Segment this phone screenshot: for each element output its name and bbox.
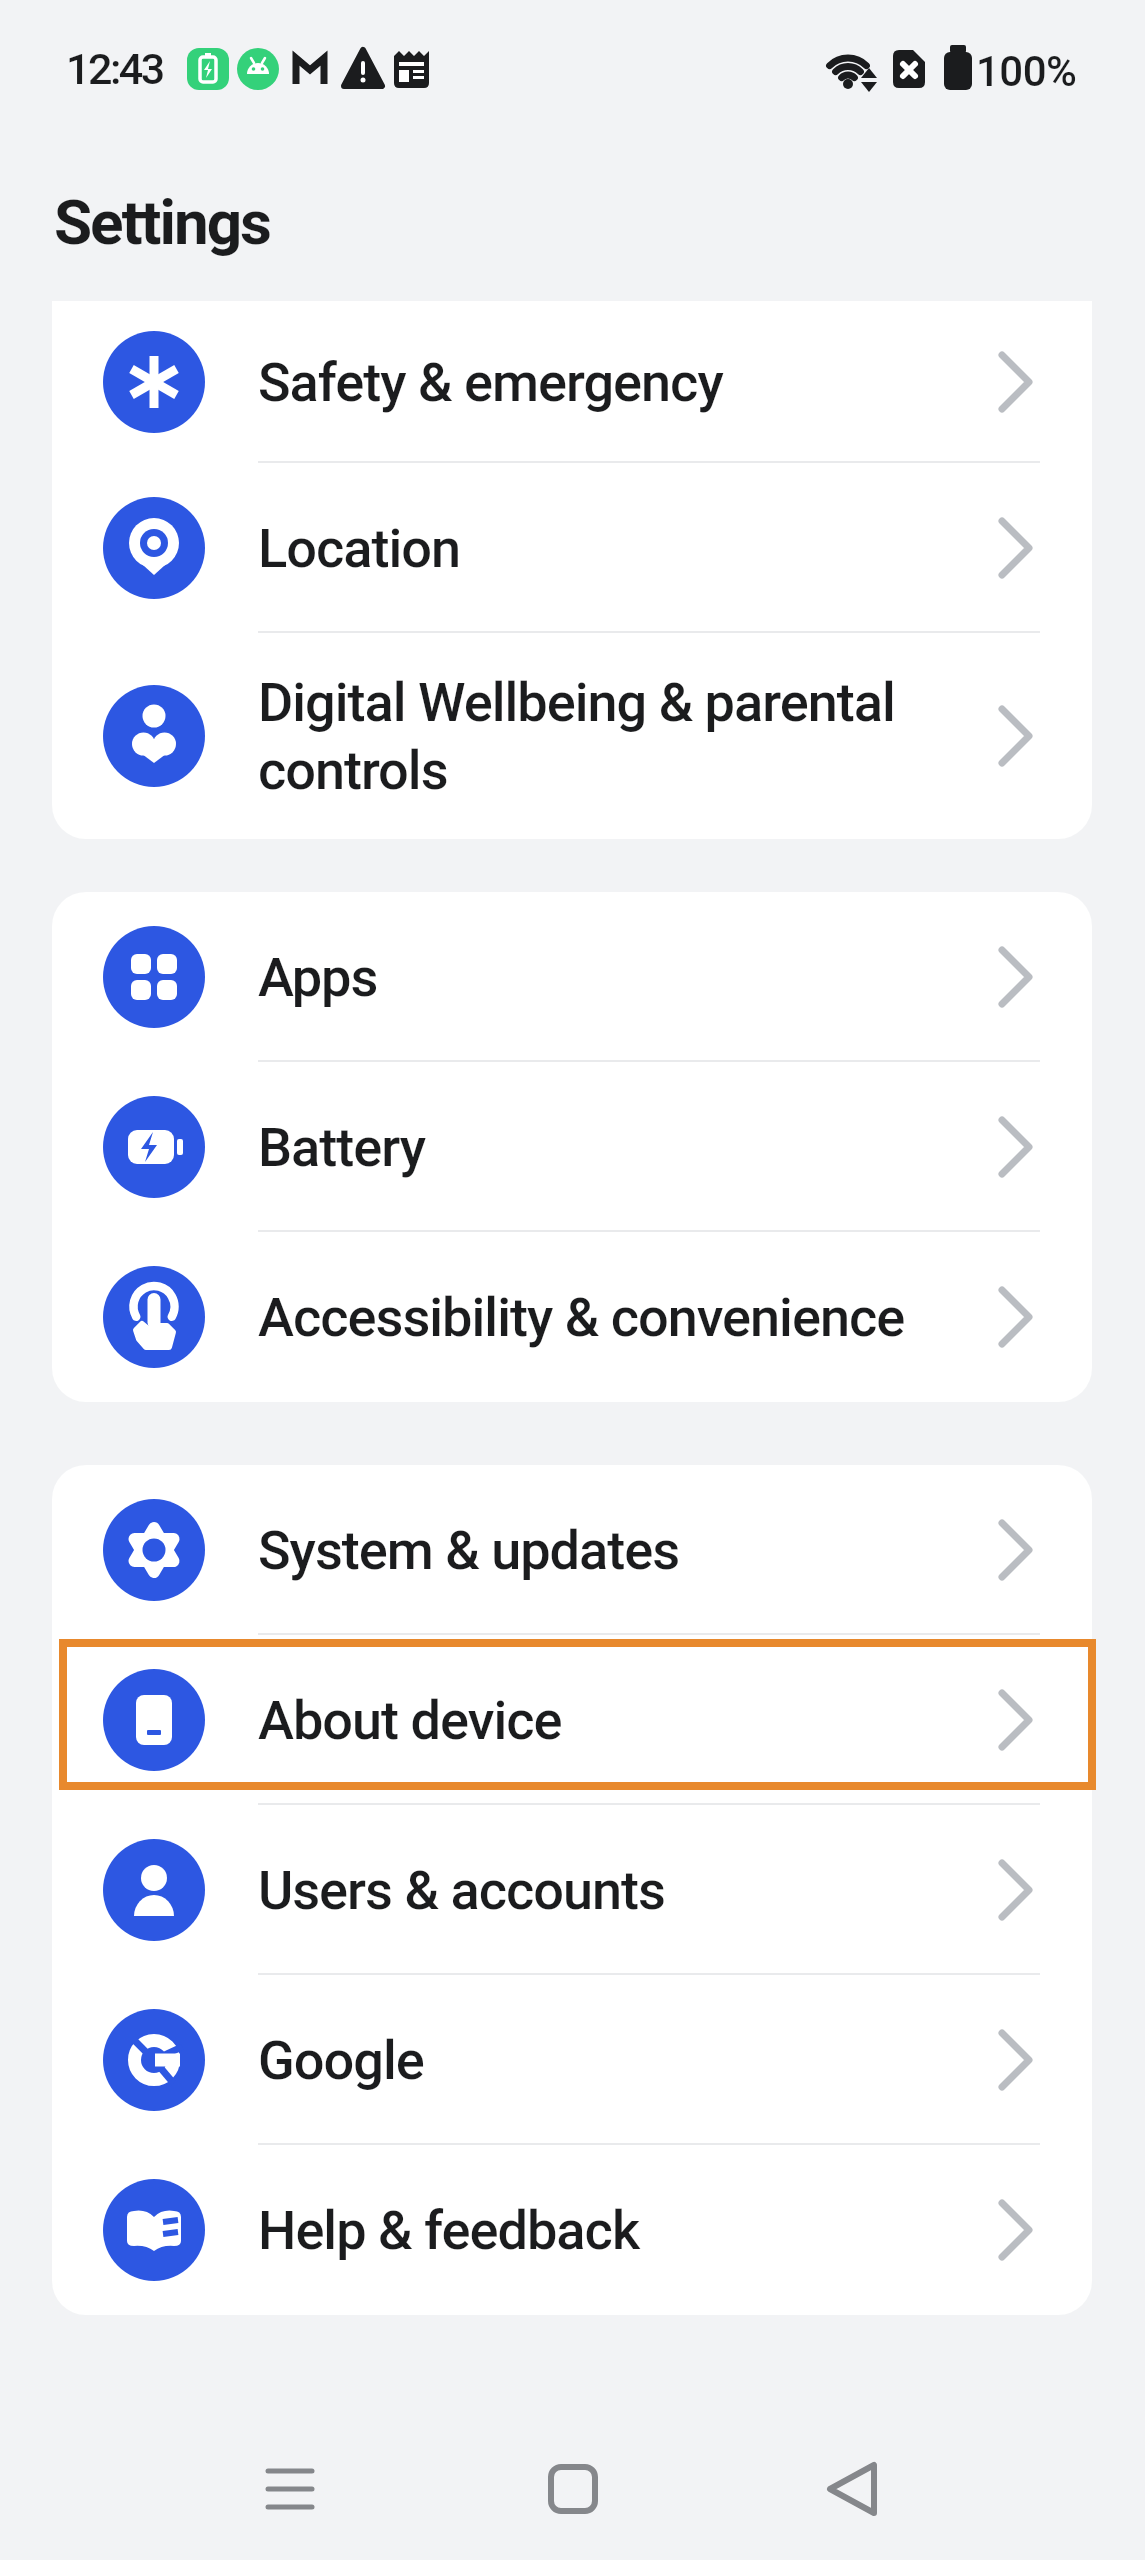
staticText: Safety & emergency	[258, 351, 723, 414]
staticText: Location	[258, 517, 461, 580]
button[interactable]: Help & feedback	[52, 2145, 1092, 2315]
staticText: System & updates	[258, 1519, 680, 1582]
button[interactable]: Safety & emergency	[52, 301, 1092, 463]
staticText: Users & accounts	[258, 1859, 665, 1922]
button[interactable]: About device	[52, 1635, 1092, 1805]
button[interactable]: Users & accounts	[52, 1805, 1092, 1975]
staticText: Google	[258, 2029, 424, 2092]
staticText: Accessibility & convenience	[258, 1286, 905, 1349]
button[interactable]: Digital Wellbeing & parental controls	[52, 633, 1092, 839]
staticText: Digital Wellbeing & parental controls	[258, 671, 895, 802]
button[interactable]: Battery	[52, 1062, 1092, 1232]
staticText: Battery	[258, 1116, 426, 1179]
button[interactable]: Location	[52, 463, 1092, 633]
button[interactable]	[245, 2444, 335, 2534]
staticText: 12:43	[66, 44, 163, 94]
button[interactable]	[528, 2444, 618, 2534]
button[interactable]	[807, 2444, 897, 2534]
staticText: Help & feedback	[258, 2199, 640, 2262]
staticText: Apps	[258, 946, 378, 1009]
staticText: About device	[258, 1689, 562, 1752]
button[interactable]: Accessibility & convenience	[52, 1232, 1092, 1402]
button[interactable]: Google	[52, 1975, 1092, 2145]
button[interactable]: System & updates	[52, 1465, 1092, 1635]
button[interactable]: Apps	[52, 892, 1092, 1062]
staticText: Settings	[54, 186, 271, 259]
staticText: 100%	[976, 47, 1077, 96]
